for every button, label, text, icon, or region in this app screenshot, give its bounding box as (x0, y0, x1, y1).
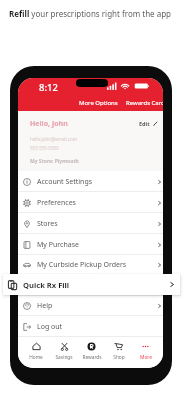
staticText: Savings (55, 354, 73, 361)
staticText: Stores (37, 219, 58, 229)
button[interactable]: Log out (18, 316, 163, 337)
button[interactable]: More (132, 337, 159, 368)
staticText: Rewards (82, 354, 102, 361)
staticText: Refill your prescriptions right from the… (9, 8, 172, 19)
button[interactable]: My Purchase (18, 234, 163, 255)
staticText: 8:12 (39, 81, 58, 91)
staticText: 555-555-5555 (30, 145, 59, 151)
staticText: Help (37, 301, 53, 311)
staticText: My Purchase (37, 240, 79, 250)
staticText: More Options (79, 99, 118, 107)
staticText: My Store: Plymouth (30, 158, 79, 165)
staticText: Hello, John (30, 119, 68, 129)
button[interactable]: Home (22, 337, 50, 368)
button[interactable]: Account Settings (18, 171, 163, 192)
button[interactable]: My Curbside Pickup Orders (18, 255, 163, 275)
staticText: Quick Rx Fill (23, 280, 70, 290)
button[interactable]: More Options (79, 99, 118, 107)
button[interactable]: Rewards (78, 337, 105, 368)
staticText: Preferences (37, 198, 76, 208)
staticText: My Curbside Pickup Orders (37, 260, 127, 270)
button[interactable]: Shop (105, 337, 132, 368)
button[interactable]: Quick Rx Fill (18, 275, 163, 296)
button[interactable]: Edit (139, 120, 158, 127)
button[interactable]: Quick Rx Fill (3, 274, 180, 295)
staticText: hello.john@email.com (30, 136, 77, 142)
staticText: Edit (139, 120, 150, 127)
button[interactable]: Preferences (18, 192, 163, 213)
staticText: Home (29, 354, 43, 361)
staticText: More (140, 354, 152, 361)
staticText: Rewards Card (126, 99, 163, 107)
staticText: Shop (113, 354, 125, 361)
button[interactable]: Savings (50, 337, 78, 368)
staticText: Quick Rx Fill (37, 281, 77, 291)
staticText: Log out (37, 322, 63, 332)
button[interactable]: Stores (18, 213, 163, 234)
staticText: Account Settings (37, 177, 93, 187)
button[interactable]: Help (18, 296, 163, 316)
button[interactable]: Rewards Card (126, 99, 163, 107)
